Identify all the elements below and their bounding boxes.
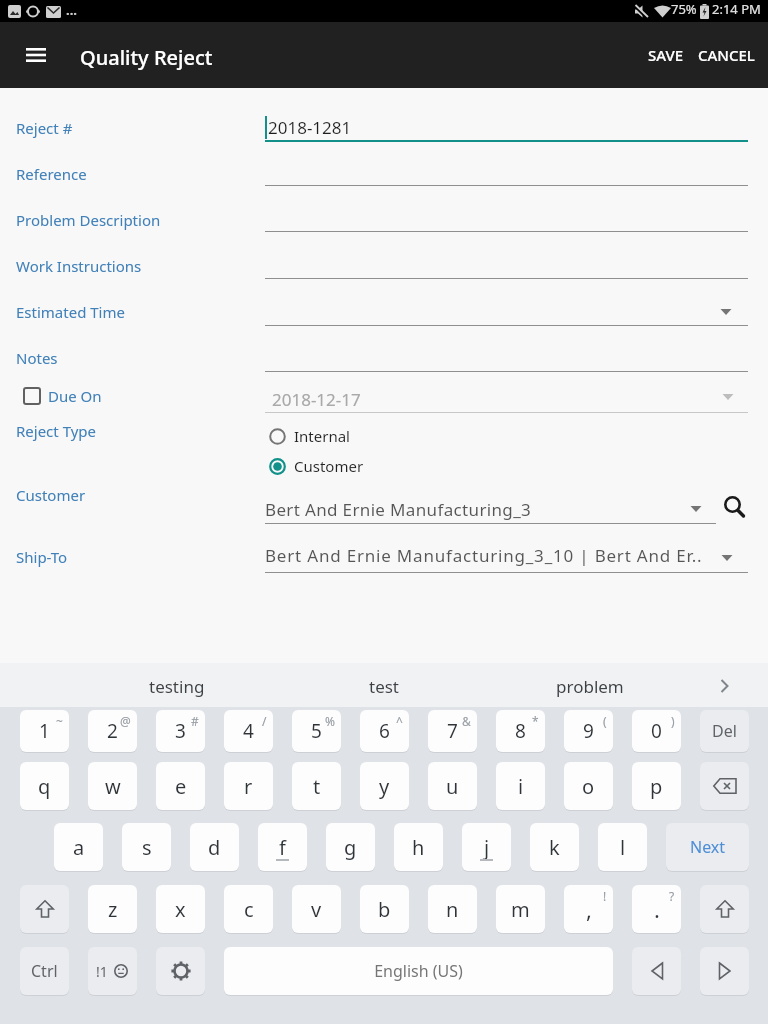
button[interactable]: 8 (496, 710, 545, 752)
button[interactable] (265, 454, 395, 479)
button[interactable]: 7 (428, 710, 477, 752)
button[interactable] (16, 384, 126, 410)
button[interactable]: Next (666, 823, 749, 871)
button[interactable]: !1 (88, 947, 137, 995)
button[interactable] (700, 885, 749, 933)
button[interactable]: CANCEL (694, 40, 758, 70)
button[interactable] (718, 492, 752, 526)
button[interactable]: 1 (20, 710, 69, 752)
staticText: r (244, 773, 253, 800)
staticText: test (369, 675, 400, 698)
button[interactable] (632, 947, 681, 995)
button[interactable]: t (292, 762, 341, 810)
button[interactable]: x (156, 885, 205, 933)
button[interactable] (265, 346, 748, 372)
button[interactable] (265, 496, 715, 524)
button[interactable]: i (496, 762, 545, 810)
button[interactable]: f (258, 823, 307, 871)
button[interactable] (265, 114, 748, 142)
staticText: Ship-To (16, 547, 68, 567)
staticText: Problem Description (16, 210, 161, 230)
staticText: s (142, 834, 152, 861)
button[interactable]: r (224, 762, 273, 810)
button[interactable]: k (530, 823, 579, 871)
staticText: 75% (671, 0, 697, 18)
button[interactable]: d (190, 823, 239, 871)
button[interactable] (700, 762, 749, 810)
button[interactable]: s (122, 823, 171, 871)
staticText: Bert And Ernie Manufacturing_3_10 | Bert… (265, 544, 703, 567)
button[interactable] (265, 206, 748, 232)
button[interactable]: test (320, 667, 448, 705)
button[interactable]: Ctrl (20, 947, 69, 995)
staticText: ( (603, 713, 607, 729)
button[interactable]: l (598, 823, 647, 871)
button[interactable]: 6 (360, 710, 409, 752)
staticText: ) (671, 713, 675, 729)
button[interactable]: 0 (632, 710, 681, 752)
staticText: n (446, 896, 459, 923)
button[interactable] (708, 667, 740, 705)
staticText: CANCEL (698, 45, 755, 65)
staticText: ^ (396, 713, 403, 729)
button[interactable] (156, 947, 205, 995)
button[interactable]: h (394, 823, 443, 871)
button[interactable]: m (496, 885, 545, 933)
button[interactable]: b (360, 885, 409, 933)
staticText: u (446, 773, 459, 800)
staticText: Reject Type (16, 421, 97, 441)
staticText: 5 (311, 718, 322, 744)
button[interactable]: v (292, 885, 341, 933)
staticText: m (511, 896, 530, 923)
button[interactable]: Del (700, 710, 749, 752)
button[interactable] (265, 300, 748, 326)
button[interactable]: problem (520, 667, 660, 705)
button[interactable] (265, 542, 748, 570)
button[interactable]: o (564, 762, 613, 810)
button[interactable]: g (326, 823, 375, 871)
button[interactable]: 2 (88, 710, 137, 752)
button[interactable]: w (88, 762, 137, 810)
button[interactable] (20, 39, 52, 71)
staticText: English (US) (374, 960, 463, 982)
button[interactable]: SAVE (638, 40, 694, 70)
button[interactable]: 3 (156, 710, 205, 752)
staticText: Next (690, 836, 726, 858)
button[interactable]: p (632, 762, 681, 810)
button[interactable]: y (360, 762, 409, 810)
staticText: Customer (294, 456, 364, 476)
button[interactable] (265, 253, 748, 279)
staticText: ! (603, 888, 607, 904)
staticText: 2018-12-17 (272, 388, 361, 411)
staticText: % (325, 713, 335, 729)
staticText: c (244, 896, 254, 923)
button[interactable]: 9 (564, 710, 613, 752)
staticText: b (378, 896, 391, 923)
button[interactable]: u (428, 762, 477, 810)
button[interactable]: e (156, 762, 205, 810)
button[interactable] (20, 885, 69, 933)
staticText: 9 (583, 718, 594, 744)
button[interactable]: j (462, 823, 511, 871)
staticText: z (108, 896, 118, 923)
button[interactable]: , (564, 885, 613, 933)
staticText: , (586, 894, 592, 924)
staticText: SAVE (648, 45, 684, 65)
staticText: Due On (48, 386, 102, 406)
staticText: Ctrl (31, 960, 58, 982)
button[interactable]: . (632, 885, 681, 933)
staticText: 3 (175, 718, 186, 744)
button[interactable]: a (54, 823, 103, 871)
button[interactable] (265, 160, 748, 186)
button[interactable]: testing (100, 667, 254, 705)
button[interactable]: 4 (224, 710, 273, 752)
button[interactable] (700, 947, 749, 995)
button[interactable]: q (20, 762, 69, 810)
button[interactable]: n (428, 885, 477, 933)
button[interactable]: c (224, 885, 273, 933)
button[interactable]: z (88, 885, 137, 933)
staticText: 1 (39, 718, 50, 744)
button[interactable] (224, 947, 613, 995)
button[interactable] (265, 424, 385, 449)
button[interactable]: 5 (292, 710, 341, 752)
